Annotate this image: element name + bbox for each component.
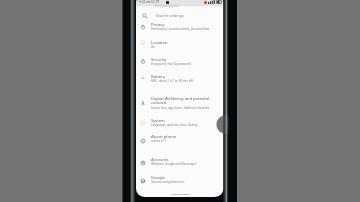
button[interactable] [136, 154, 223, 171]
button[interactable] [136, 71, 223, 88]
button[interactable] [136, 37, 223, 54]
staticText: Accounts [151, 157, 169, 163]
button[interactable] [136, 19, 223, 36]
button[interactable]: Search settings [136, 9, 223, 22]
staticText: Digital Wellbeing and parental controls [151, 96, 213, 106]
staticText: Screen time, app timers, bedtime schedul… [151, 106, 210, 110]
staticText: Webhook, Google and Messenger [151, 162, 197, 166]
staticText: Languages, gestures, time, Backup [151, 123, 198, 127]
button[interactable] [136, 55, 223, 72]
staticText: Permissions, account activity, personal … [151, 27, 210, 31]
button[interactable] [136, 94, 223, 115]
staticText: Google [151, 175, 165, 181]
button[interactable] [136, 131, 223, 148]
staticText: Location [151, 40, 168, 46]
staticText: Privacy [151, 22, 165, 28]
button[interactable] [136, 172, 223, 189]
staticText: On [151, 45, 155, 49]
staticText: Fingerprint, face & passwords [151, 62, 191, 66]
staticText: Search settings [156, 13, 184, 18]
button[interactable] [136, 115, 223, 132]
staticText: Services and preferences [151, 180, 185, 184]
staticText: 88% - about 1 d 1 hr, 30 min left [151, 79, 194, 83]
staticText: System [151, 118, 165, 124]
staticText: realme C11 [151, 139, 167, 143]
staticText: Security [151, 57, 167, 63]
staticText: Lit is lived phone [155, 4, 179, 8]
staticText: Battery [151, 74, 166, 80]
staticText: About phone [151, 134, 177, 140]
staticText: 9:32 am [139, 0, 151, 4]
staticText: 12 TP [151, 0, 160, 4]
